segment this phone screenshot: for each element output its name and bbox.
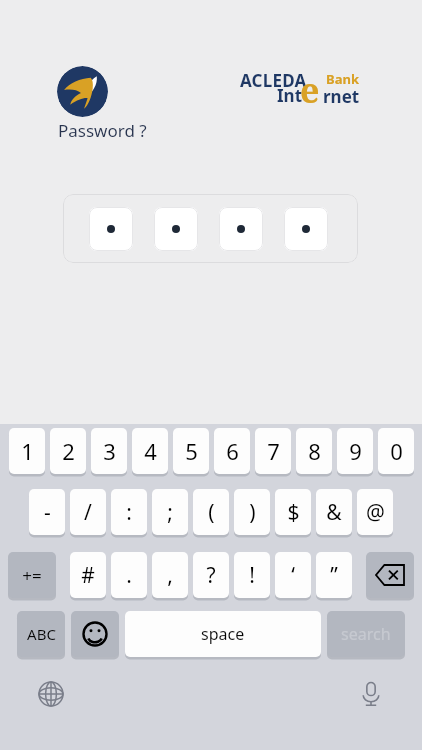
- button[interactable]: space: [125, 611, 321, 657]
- button[interactable]: 7: [255, 428, 291, 474]
- staticText: 0: [390, 436, 403, 466]
- button[interactable]: [154, 207, 198, 251]
- staticText: !: [249, 561, 255, 590]
- staticText: 7: [267, 436, 280, 466]
- button[interactable]: 0: [378, 428, 414, 474]
- staticText: ”: [330, 561, 338, 590]
- button[interactable]: ACLEDA logo: [57, 66, 108, 117]
- button[interactable]: 1: [9, 428, 45, 474]
- staticText: -: [44, 498, 51, 527]
- button[interactable]: &: [316, 489, 352, 535]
- staticText: search: [341, 623, 391, 645]
- staticText: Int: [277, 84, 303, 107]
- staticText: /: [84, 498, 92, 527]
- button[interactable]: ‘: [275, 552, 311, 598]
- staticText: rnet: [323, 85, 360, 108]
- staticText: e: [300, 67, 320, 111]
- staticText: Bank: [326, 70, 359, 88]
- button[interactable]: ,: [152, 552, 188, 598]
- button[interactable]: Emoji: [71, 611, 119, 657]
- staticText: :: [126, 498, 132, 527]
- button[interactable]: [284, 207, 328, 251]
- staticText: ABC: [27, 624, 56, 644]
- staticText: 1: [21, 436, 34, 466]
- staticText: 9: [349, 436, 362, 466]
- button[interactable]: [219, 207, 263, 251]
- button[interactable]: /: [70, 489, 106, 535]
- button[interactable]: [89, 207, 133, 251]
- button[interactable]: ABC: [17, 611, 65, 657]
- button[interactable]: $: [275, 489, 311, 535]
- button[interactable]: :: [111, 489, 147, 535]
- button[interactable]: 8: [296, 428, 332, 474]
- staticText: ?: [206, 561, 216, 590]
- staticText: ,: [167, 561, 173, 590]
- button[interactable]: #: [70, 552, 106, 598]
- button[interactable]: 9: [337, 428, 373, 474]
- staticText: Password ?: [58, 119, 147, 142]
- staticText: $: [287, 498, 300, 527]
- button[interactable]: Change language: [33, 676, 69, 712]
- button[interactable]: 2: [50, 428, 86, 474]
- button[interactable]: @: [357, 489, 393, 535]
- staticText: 6: [226, 436, 239, 466]
- staticText: 2: [62, 436, 75, 466]
- staticText: space: [201, 623, 245, 645]
- button[interactable]: ): [234, 489, 270, 535]
- staticText: 3: [103, 436, 116, 466]
- button[interactable]: ;: [152, 489, 188, 535]
- staticText: 8: [308, 436, 321, 466]
- button[interactable]: 4: [132, 428, 168, 474]
- button[interactable]: ”: [316, 552, 352, 598]
- staticText: +=: [22, 564, 42, 587]
- staticText: ;: [167, 498, 173, 527]
- staticText: ‘: [291, 561, 295, 590]
- button[interactable]: 6: [214, 428, 250, 474]
- staticText: @: [366, 498, 385, 527]
- staticText: ACLEDA: [240, 69, 307, 92]
- staticText: (: [208, 498, 215, 527]
- button[interactable]: 3: [91, 428, 127, 474]
- button[interactable]: Backspace: [366, 552, 414, 598]
- button[interactable]: ?: [193, 552, 229, 598]
- button[interactable]: search: [327, 611, 405, 657]
- button[interactable]: 5: [173, 428, 209, 474]
- staticText: &: [326, 498, 342, 527]
- button[interactable]: .: [111, 552, 147, 598]
- button[interactable]: !: [234, 552, 270, 598]
- button[interactable]: Voice input: [353, 676, 389, 712]
- button[interactable]: +=: [8, 552, 56, 598]
- staticText: 4: [144, 436, 157, 466]
- staticText: 5: [185, 436, 198, 466]
- button[interactable]: -: [29, 489, 65, 535]
- staticText: .: [126, 561, 132, 590]
- button[interactable]: (: [193, 489, 229, 535]
- staticText: #: [81, 561, 95, 590]
- staticText: ): [249, 498, 256, 527]
